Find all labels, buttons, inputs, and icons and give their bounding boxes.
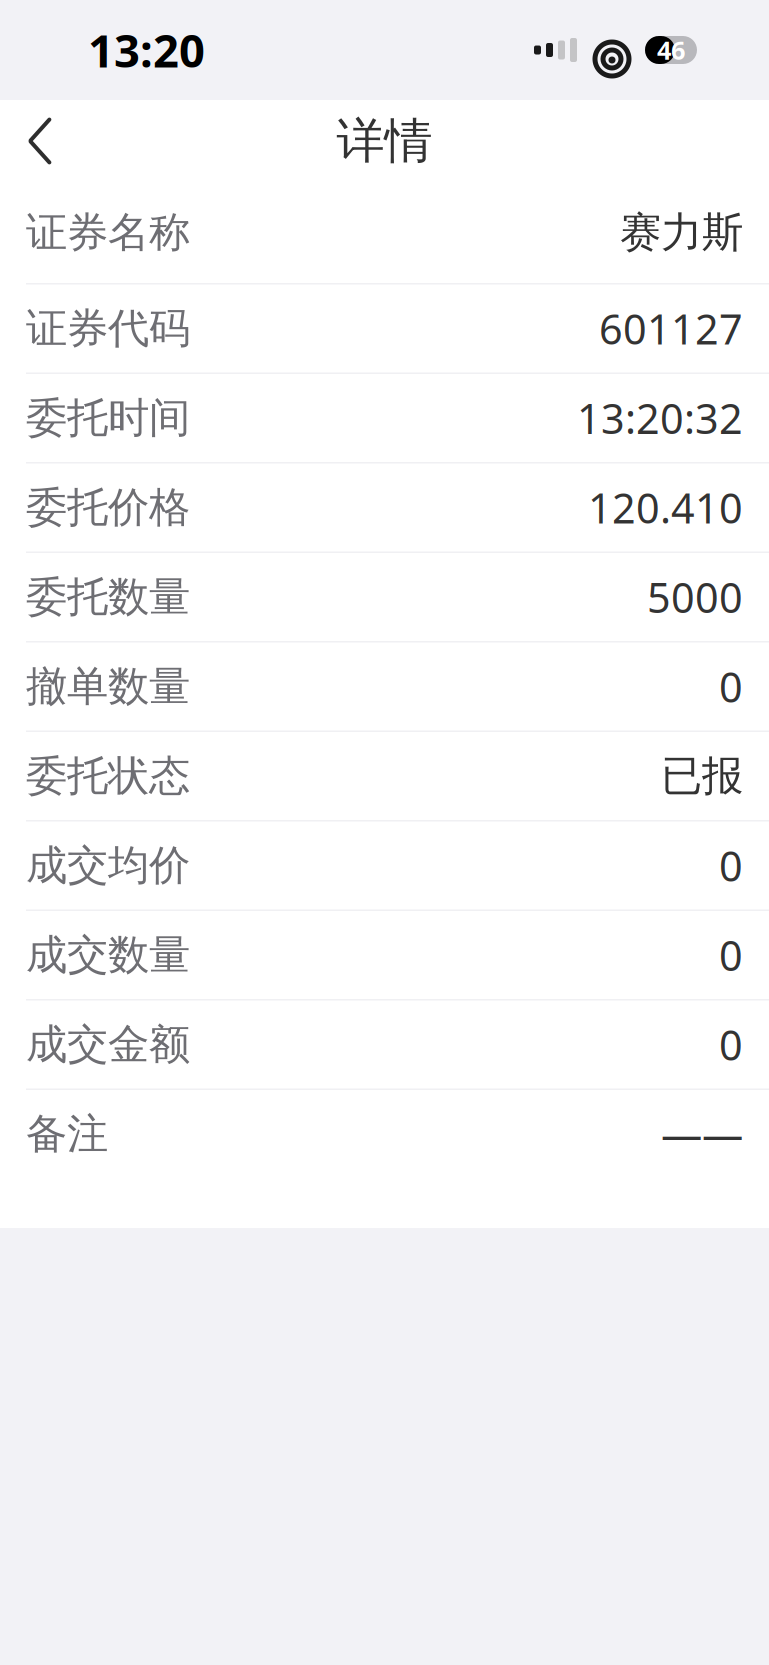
staticText: 13:20 bbox=[88, 20, 205, 80]
staticText: 0 bbox=[719, 838, 743, 893]
staticText: 委托状态 bbox=[26, 751, 190, 801]
staticText: 601127 bbox=[599, 301, 743, 356]
staticText: 委托价格 bbox=[26, 482, 190, 533]
staticText: 赛力斯 bbox=[620, 207, 743, 258]
staticText: 证券代码 bbox=[26, 303, 190, 354]
staticText: 6 bbox=[671, 33, 685, 67]
staticText: 成交数量 bbox=[26, 930, 190, 980]
staticText: 委托数量 bbox=[26, 572, 190, 622]
staticText: 证券名称 bbox=[26, 207, 190, 258]
staticText: 撤单数量 bbox=[26, 661, 190, 712]
staticText: 0 bbox=[719, 928, 743, 982]
staticText: —— bbox=[661, 1107, 743, 1161]
staticText: 4 bbox=[657, 33, 671, 67]
button[interactable]: Back bbox=[0, 101, 80, 181]
staticText: 13:20:32 bbox=[577, 391, 743, 445]
staticText: 已报 bbox=[661, 751, 743, 801]
staticText: 5000 bbox=[647, 570, 743, 624]
staticText: 120.410 bbox=[588, 480, 743, 535]
staticText: 委托时间 bbox=[26, 393, 190, 443]
staticText: 备注 bbox=[26, 1109, 108, 1159]
staticText: 0 bbox=[719, 1017, 743, 1072]
staticText: 成交金额 bbox=[26, 1019, 190, 1070]
staticText: 详情 bbox=[336, 111, 432, 170]
staticText: 成交均价 bbox=[26, 840, 190, 891]
staticText: 0 bbox=[719, 659, 743, 714]
